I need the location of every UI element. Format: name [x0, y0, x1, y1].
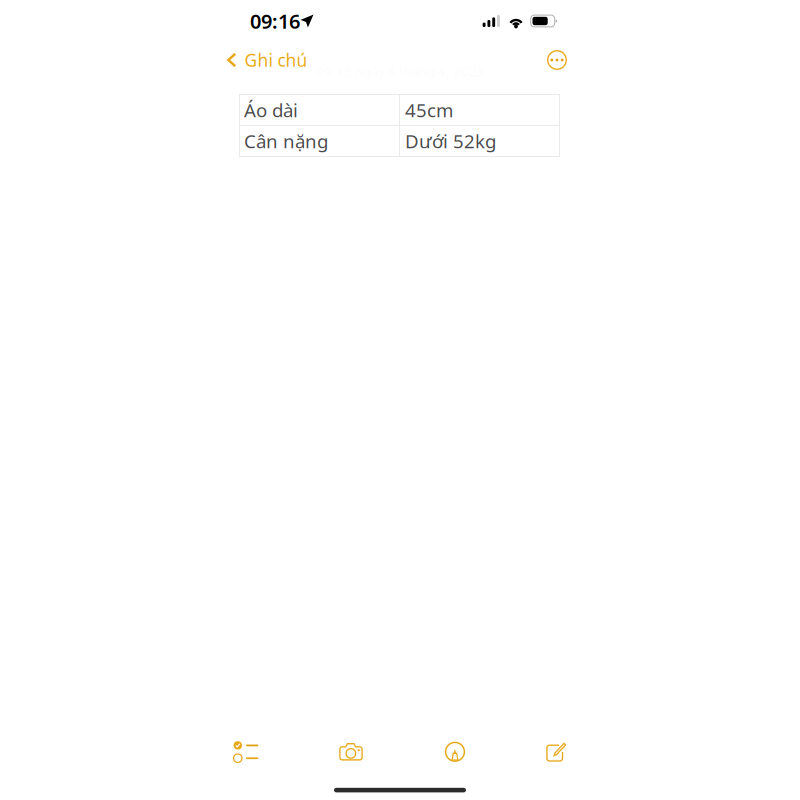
- button[interactable]: Ghi chú: [227, 44, 308, 76]
- staticText: 45cm: [405, 98, 453, 122]
- button[interactable]: Markup: [433, 730, 477, 774]
- staticText: 09:16: [250, 8, 300, 34]
- button[interactable]: More options: [540, 44, 574, 76]
- button[interactable]: New note: [534, 730, 578, 774]
- staticText: Dưới 52kg: [405, 129, 496, 153]
- button[interactable]: Camera: [329, 730, 373, 774]
- staticText: Áo dài: [244, 98, 298, 122]
- staticText: Cân nặng: [244, 129, 328, 153]
- staticText: Ghi chú: [245, 48, 308, 71]
- button[interactable]: Checklist: [224, 730, 268, 774]
